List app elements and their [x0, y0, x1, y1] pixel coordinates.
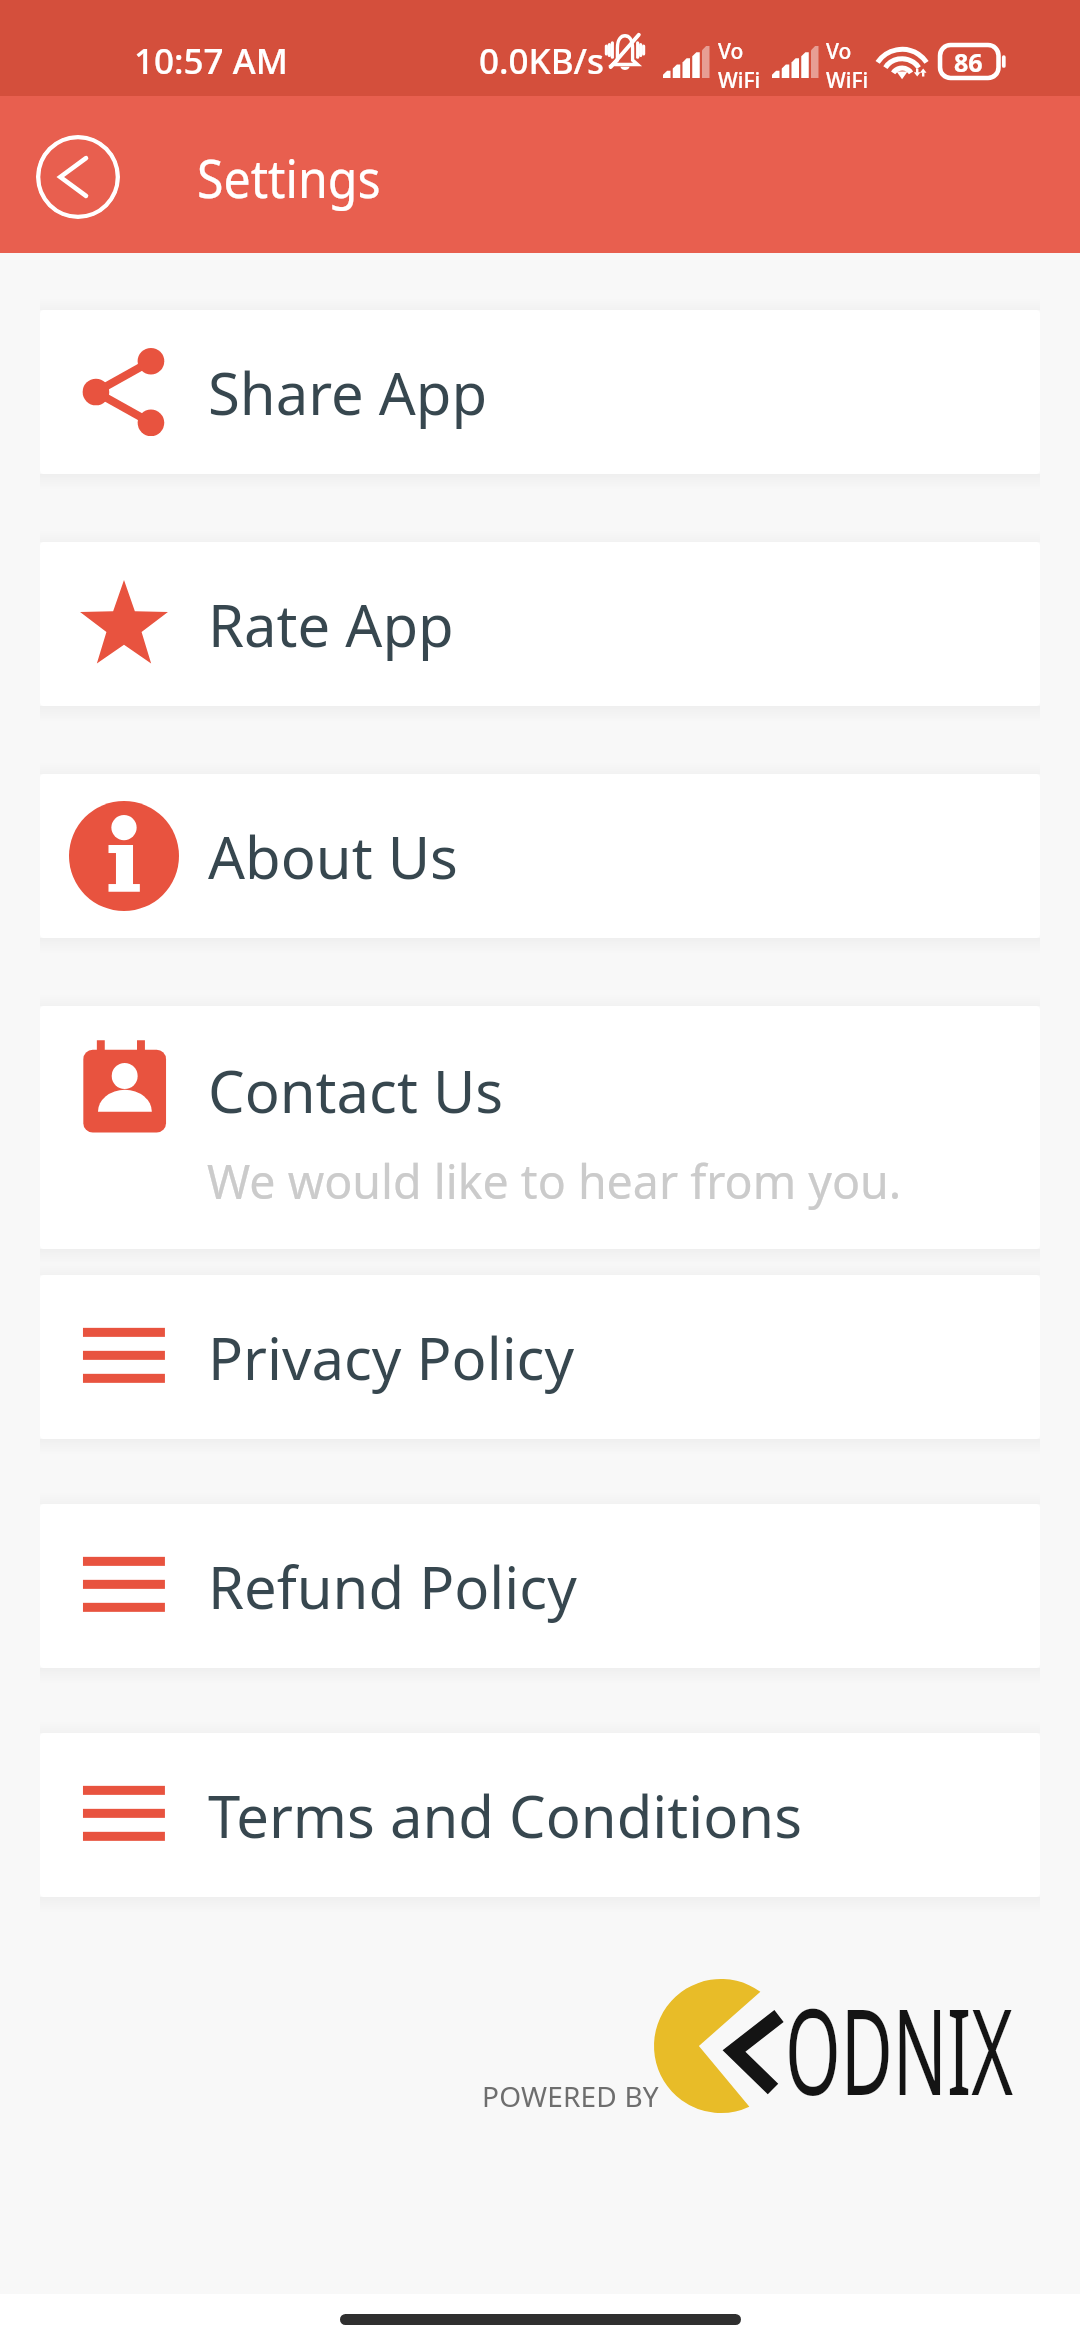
- staticText: POWERED BY: [482, 2077, 659, 2115]
- staticText: Refund Policy: [208, 1547, 577, 1626]
- staticText: Privacy Policy: [208, 1318, 575, 1397]
- button[interactable]: Terms and Conditions: [40, 1733, 1040, 1897]
- staticText: Terms and Conditions: [208, 1776, 802, 1855]
- staticText: About Us: [208, 817, 458, 896]
- staticText: Settings: [197, 141, 381, 213]
- button[interactable]: Share App: [40, 310, 1040, 474]
- button[interactable]: Back: [36, 135, 120, 219]
- staticText: Share App: [208, 353, 488, 432]
- staticText: 0.0KB/s: [479, 37, 605, 85]
- staticText: WiFi: [718, 66, 761, 95]
- button[interactable]: Rate App: [40, 542, 1040, 706]
- button[interactable]: Contact Us: [40, 1006, 1040, 1249]
- staticText: We would like to hear from you.: [207, 1149, 902, 1212]
- staticText: Vo: [826, 37, 852, 66]
- staticText: 86: [954, 45, 983, 79]
- button[interactable]: Refund Policy: [40, 1504, 1040, 1668]
- button[interactable]: Privacy Policy: [40, 1275, 1040, 1439]
- staticText: Vo: [718, 37, 744, 66]
- staticText: 10:57 AM: [134, 37, 288, 85]
- staticText: Contact Us: [208, 1051, 504, 1130]
- button[interactable]: About Us: [40, 774, 1040, 938]
- staticText: WiFi: [826, 66, 869, 95]
- staticText: ODNIX: [785, 1969, 1013, 2130]
- staticText: Rate App: [208, 585, 454, 664]
